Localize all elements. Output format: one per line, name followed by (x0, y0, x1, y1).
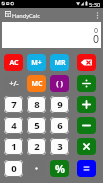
button[interactable]: Equals (77, 160, 96, 177)
staticText: 7 (11, 98, 17, 111)
staticText: 6 (57, 119, 63, 132)
button[interactable]: 9 (50, 96, 69, 113)
staticText: 5 (34, 119, 40, 132)
button[interactable]: M+ (27, 54, 46, 71)
staticText: 0 (93, 32, 100, 46)
button[interactable]: AC (4, 54, 23, 71)
staticText: MC (31, 79, 43, 89)
button[interactable]: ( ) (50, 75, 69, 92)
button[interactable]: +/- (4, 75, 23, 92)
button[interactable]: Multiply (77, 138, 96, 155)
staticText: MR (54, 58, 66, 68)
button[interactable]: 7 (4, 96, 23, 113)
staticText: 0 (94, 26, 99, 36)
button[interactable]: Minus (77, 117, 96, 134)
button[interactable]: MC (27, 75, 46, 92)
staticText: 8 (34, 98, 40, 111)
staticText: 9 (57, 98, 63, 111)
button[interactable]: 5 (27, 117, 46, 134)
staticText: 1 (11, 140, 17, 153)
staticText: 5:30 (89, 1, 101, 9)
button[interactable]: 8 (27, 96, 46, 113)
button[interactable]: Divide (77, 75, 96, 92)
button[interactable]: 0 (4, 160, 23, 177)
staticText: +/- (9, 79, 19, 89)
staticText: 3 (57, 140, 63, 153)
button[interactable]: MR (50, 54, 69, 71)
staticText: HandyCalc (12, 12, 40, 20)
staticText: 0 (11, 162, 17, 175)
staticText: 2 (34, 140, 40, 153)
button[interactable]: Backspace (77, 54, 96, 71)
button[interactable]: More options (92, 8, 103, 23)
button[interactable]: % (50, 160, 69, 177)
button[interactable]: 4 (4, 117, 23, 134)
staticText: 4 (11, 119, 17, 132)
staticText: M+ (31, 58, 42, 68)
button[interactable]: 1 (4, 138, 23, 155)
button[interactable]: 2 (27, 138, 46, 155)
button[interactable]: 3 (50, 138, 69, 155)
staticText: ( ) (56, 79, 63, 89)
button[interactable]: Plus (77, 96, 96, 113)
button[interactable]: Decimal point (27, 160, 46, 177)
button[interactable]: 6 (50, 117, 69, 134)
staticText: % (55, 161, 65, 176)
staticText: AC (9, 58, 19, 68)
